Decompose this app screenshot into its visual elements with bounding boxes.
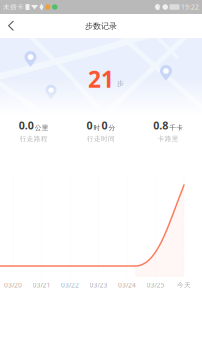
staticText: 19:22 [181,2,199,12]
button[interactable]: Back [0,14,22,38]
staticText: 0 [101,118,107,132]
staticText: 公里 [35,124,49,132]
staticText: 0 [86,118,92,132]
staticText: 行走路程 [20,135,48,143]
staticText: 03/24 [118,280,136,290]
staticText: 03/22 [61,280,79,290]
staticText: 今天 [177,281,191,289]
staticText: 分 [108,124,115,132]
staticText: 03/23 [89,280,107,290]
staticText: 行走时间 [87,135,115,143]
staticText: 步 [117,79,124,88]
staticText: 03/25 [146,280,164,290]
staticText: 步数记录 [85,21,117,31]
staticText: 0.8 [153,118,168,132]
staticText: 0.0 [19,118,34,132]
staticText: 千卡 [169,124,183,132]
staticText: 03/20 [4,280,22,290]
staticText: 时 [93,124,100,132]
staticText: 03/21 [32,280,50,290]
staticText: 未插卡 [3,3,24,11]
staticText: 21 [88,64,114,94]
staticText: 卡路里 [158,135,179,143]
